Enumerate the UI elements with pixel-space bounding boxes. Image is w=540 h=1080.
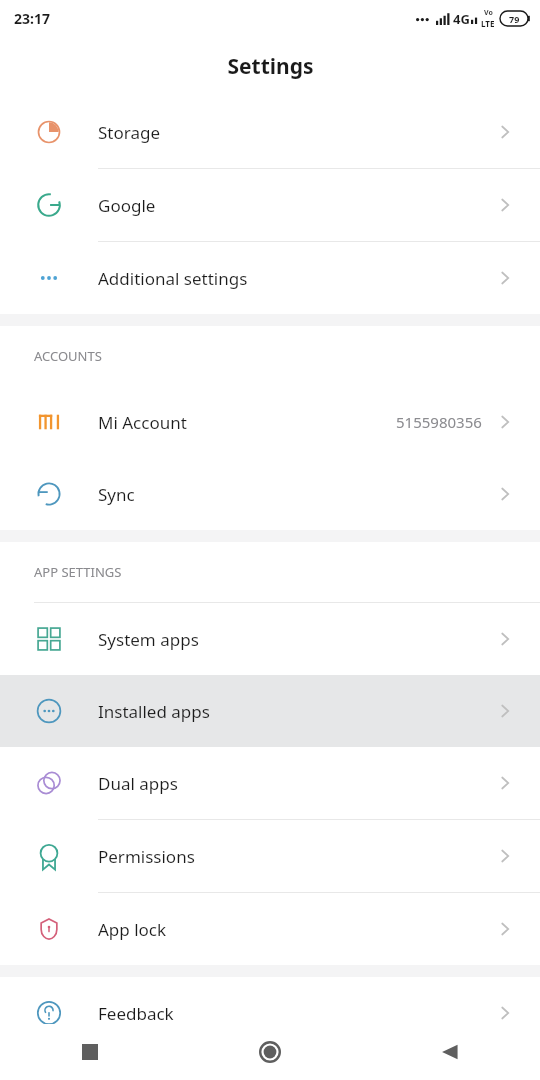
- staticText: Vo: [484, 8, 493, 18]
- staticText: ACCOUNTS: [34, 347, 102, 365]
- button[interactable]: Feedback: [0, 977, 540, 1049]
- staticText: 79: [509, 13, 520, 25]
- staticText: APP SETTINGS: [34, 563, 122, 581]
- button[interactable]: App lock: [0, 893, 540, 965]
- button[interactable]: System apps: [0, 603, 540, 675]
- staticText: System apps: [98, 628, 496, 651]
- staticText: Google: [98, 194, 496, 217]
- staticText: 5155980356: [396, 412, 482, 432]
- staticText: Feedback: [98, 1002, 496, 1025]
- button[interactable]: Storage: [0, 96, 540, 168]
- button[interactable]: Recent apps: [0, 1024, 180, 1080]
- button[interactable]: Installed apps: [0, 675, 540, 747]
- staticText: Storage: [98, 121, 496, 144]
- button[interactable]: Google: [0, 169, 540, 241]
- staticText: Dual apps: [98, 772, 496, 795]
- button[interactable]: Dual apps: [0, 747, 540, 819]
- button[interactable]: Home: [180, 1024, 360, 1080]
- staticText: Settings: [227, 52, 314, 81]
- staticText: App lock: [98, 918, 496, 941]
- button[interactable]: Back: [360, 1024, 540, 1080]
- button[interactable]: Additional settings: [0, 242, 540, 314]
- button[interactable]: Mi Account: [0, 386, 540, 458]
- staticText: Installed apps: [98, 700, 496, 723]
- staticText: Permissions: [98, 845, 496, 868]
- staticText: Sync: [98, 483, 496, 506]
- staticText: 4G: [453, 10, 470, 28]
- staticText: 23:17: [14, 9, 50, 28]
- button[interactable]: Sync: [0, 458, 540, 530]
- button[interactable]: Permissions: [0, 820, 540, 892]
- staticText: Additional settings: [98, 267, 496, 290]
- staticText: Mi Account: [98, 411, 396, 434]
- staticText: LTE: [481, 18, 495, 29]
